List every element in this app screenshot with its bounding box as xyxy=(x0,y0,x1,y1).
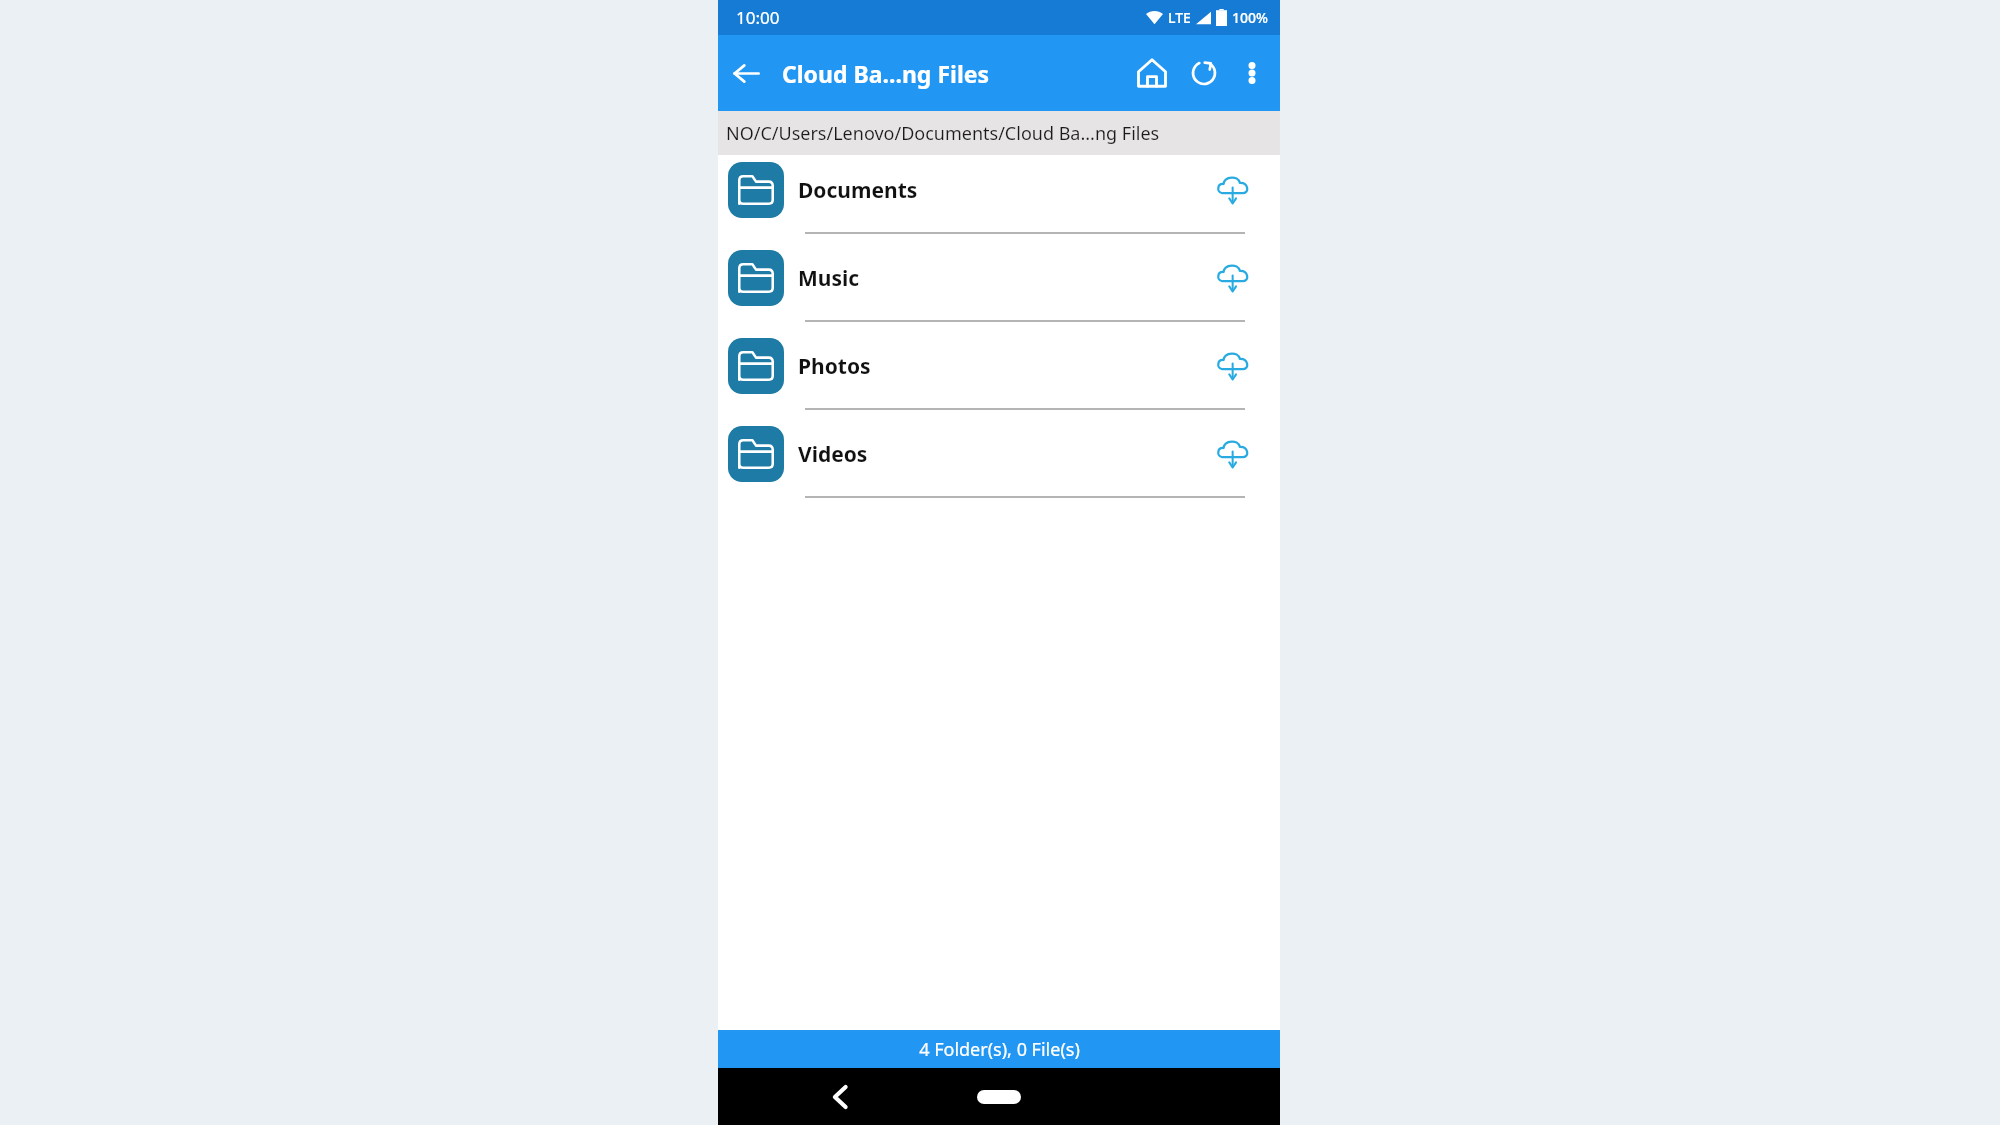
button[interactable]: Home xyxy=(1126,47,1178,99)
button[interactable]: Documents xyxy=(718,155,1280,243)
button[interactable]: Videos xyxy=(718,419,1280,507)
staticText: Videos xyxy=(798,440,868,469)
button[interactable]: Download Music xyxy=(1206,251,1260,305)
button[interactable]: Photos xyxy=(718,331,1280,419)
button[interactable]: Back xyxy=(718,45,774,101)
staticText: Documents xyxy=(798,176,918,205)
button[interactable]: 4 Folder(s), 0 File(s) xyxy=(718,1030,1280,1068)
staticText: 4 Folder(s), 0 File(s) xyxy=(919,1037,1080,1062)
staticText: LTE xyxy=(1168,8,1191,27)
staticText: 10:00 xyxy=(736,6,780,29)
staticText: Cloud Ba...ng Files xyxy=(782,58,990,89)
button[interactable]: Back xyxy=(818,1075,862,1119)
staticText: 100% xyxy=(1232,8,1268,27)
staticText: NO/C/Users/Lenovo/Documents/Cloud Ba...n… xyxy=(726,121,1160,146)
staticText: Photos xyxy=(798,352,871,381)
button[interactable]: Download Photos xyxy=(1206,339,1260,393)
button[interactable]: Refresh xyxy=(1178,47,1230,99)
button[interactable]: Home xyxy=(969,1082,1029,1112)
button[interactable]: Download Documents xyxy=(1206,163,1260,217)
button[interactable]: More options xyxy=(1230,51,1274,95)
button[interactable]: Music xyxy=(718,243,1280,331)
button[interactable]: NO/C/Users/Lenovo/Documents/Cloud Ba...n… xyxy=(718,111,1280,155)
staticText: Music xyxy=(798,264,860,293)
button[interactable]: Download Videos xyxy=(1206,427,1260,481)
